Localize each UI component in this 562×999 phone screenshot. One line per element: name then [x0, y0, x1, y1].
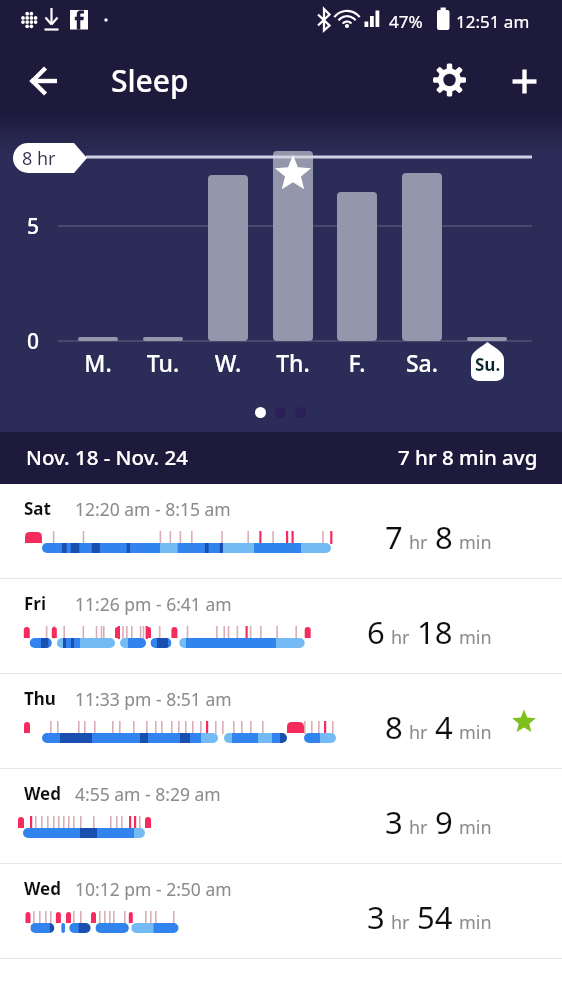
staticText: 9: [435, 801, 453, 843]
staticText: 7: [385, 516, 403, 558]
button[interactable]: Settings: [426, 57, 474, 105]
button[interactable]: Sat: [0, 484, 562, 579]
staticText: min: [459, 530, 492, 555]
staticText: 11:26 pm - 6:41 am: [75, 592, 232, 616]
staticText: 5: [27, 212, 40, 241]
staticText: 10:12 pm - 2:50 am: [75, 877, 232, 901]
staticText: 3: [385, 801, 403, 843]
button[interactable]: Thu: [0, 674, 562, 769]
staticText: min: [459, 815, 492, 840]
staticText: 8 hr: [22, 146, 56, 171]
staticText: min: [459, 720, 492, 745]
staticText: Wed: [24, 782, 61, 805]
staticText: Thu: [24, 687, 56, 710]
staticText: hr: [409, 530, 428, 555]
staticText: 47%: [389, 10, 423, 33]
button[interactable]: Wed: [0, 864, 562, 959]
staticText: 12:20 am - 8:15 am: [75, 497, 231, 521]
staticText: 54: [417, 896, 453, 938]
staticText: hr: [391, 910, 410, 935]
staticText: 12:51 am: [456, 10, 530, 33]
button[interactable]: Wed: [0, 769, 562, 864]
staticText: Tu.: [133, 347, 193, 378]
staticText: 4: [435, 706, 453, 748]
staticText: M.: [68, 347, 128, 378]
staticText: 18: [417, 611, 453, 653]
button[interactable]: Su.: [471, 342, 504, 381]
staticText: 4:55 am - 8:29 am: [75, 782, 221, 806]
staticText: 0: [27, 327, 40, 356]
staticText: Sat: [24, 497, 51, 520]
staticText: 8: [435, 516, 453, 558]
staticText: Sleep: [111, 60, 189, 101]
staticText: Su.: [475, 353, 501, 376]
staticText: 6: [367, 611, 385, 653]
staticText: Sa.: [392, 347, 452, 378]
staticText: Fri: [24, 592, 47, 615]
button[interactable]: Add sleep log: [501, 58, 548, 105]
staticText: Th.: [263, 347, 323, 378]
staticText: hr: [391, 625, 410, 650]
staticText: F.: [327, 347, 387, 378]
staticText: Nov. 18 - Nov. 24: [26, 443, 188, 471]
staticText: W.: [198, 347, 258, 378]
staticText: 7 hr 8 min avg: [398, 443, 538, 471]
button[interactable]: Fri: [0, 579, 562, 674]
staticText: min: [459, 910, 492, 935]
staticText: Wed: [24, 877, 61, 900]
staticText: hr: [409, 720, 428, 745]
staticText: 11:33 pm - 8:51 am: [75, 687, 232, 711]
staticText: 8: [385, 706, 403, 748]
staticText: min: [459, 625, 492, 650]
staticText: hr: [409, 815, 428, 840]
staticText: 3: [367, 896, 385, 938]
button[interactable]: Back: [16, 53, 72, 109]
